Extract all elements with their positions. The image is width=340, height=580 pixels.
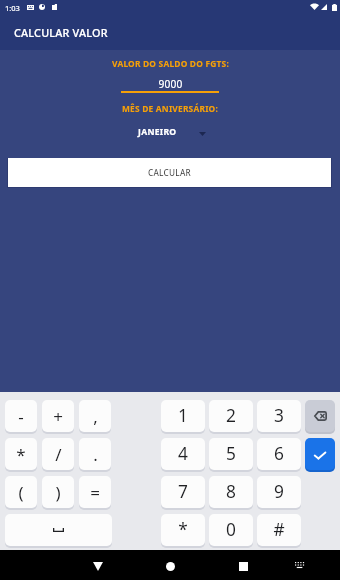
staticText: 5 (226, 442, 236, 466)
button[interactable]: 2 (209, 400, 253, 432)
button[interactable]: Space (5, 514, 112, 546)
staticText: - (18, 405, 24, 428)
button[interactable]: - (5, 400, 37, 432)
button[interactable]: # (257, 514, 301, 546)
button[interactable]: 5 (209, 438, 253, 470)
button[interactable]: 6 (257, 438, 301, 470)
button[interactable]: * (161, 514, 205, 546)
button[interactable]: Switch keyboard (294, 561, 305, 569)
button[interactable]: Back (88, 556, 108, 576)
button[interactable]: . (79, 438, 111, 470)
button[interactable]: 7 (161, 476, 205, 508)
staticText: 4 (178, 442, 188, 466)
button[interactable]: ( (5, 476, 37, 508)
staticText: , (93, 405, 98, 428)
staticText: * (178, 518, 188, 542)
staticText: * (16, 443, 26, 466)
staticText: + (53, 405, 63, 428)
button[interactable]: JANEIRO (138, 126, 206, 138)
button[interactable]: + (42, 400, 74, 432)
staticText: 8 (226, 480, 236, 504)
button[interactable]: / (42, 438, 74, 470)
button[interactable]: 1 (161, 400, 205, 432)
staticText: 9 (274, 480, 284, 504)
staticText: CALCULAR VALOR (14, 25, 108, 40)
staticText: 1:03 (5, 3, 20, 13)
staticText: VALOR DO SALDO DO FGTS: (112, 58, 229, 69)
staticText: CALCULAR (148, 167, 191, 178)
button[interactable]: * (5, 438, 37, 470)
button[interactable]: Backspace (305, 400, 335, 432)
button[interactable]: , (79, 400, 111, 432)
button[interactable]: Enter (305, 438, 335, 470)
staticText: ( (18, 481, 24, 504)
staticText: 2 (226, 404, 236, 428)
button[interactable]: 8 (209, 476, 253, 508)
staticText: 6 (274, 442, 284, 466)
button[interactable]: CALCULAR (8, 158, 331, 187)
button[interactable]: 0 (209, 514, 253, 546)
button[interactable]: 3 (257, 400, 301, 432)
button[interactable]: 9 (257, 476, 301, 508)
staticText: 7 (178, 480, 188, 504)
staticText: JANEIRO (138, 126, 177, 138)
button[interactable]: 4 (161, 438, 205, 470)
staticText: 9000 (158, 77, 183, 91)
button[interactable]: Recents (233, 556, 253, 576)
staticText: ) (55, 481, 61, 504)
staticText: . (93, 443, 98, 466)
staticText: 3 (274, 404, 284, 428)
staticText: = (90, 481, 100, 504)
button[interactable]: Home (160, 556, 180, 576)
staticText: MÊS DE ANIVERSÁRIO: (122, 103, 218, 114)
button[interactable]: ) (42, 476, 74, 508)
button[interactable]: = (79, 476, 111, 508)
staticText: # (273, 518, 285, 542)
staticText: 1 (178, 404, 188, 428)
staticText: 0 (226, 518, 236, 542)
staticText: / (55, 443, 62, 466)
